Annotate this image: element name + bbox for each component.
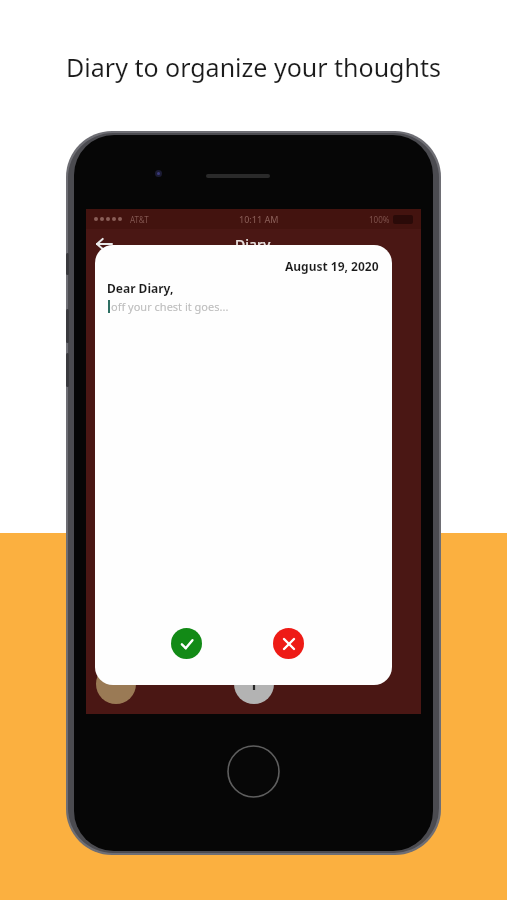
staticText: 10:11 AM [239,213,279,225]
staticText: AT&T [130,214,149,225]
button[interactable]: Add entry [234,664,274,704]
button[interactable]: Profile [96,664,136,704]
staticText: Diary to organize your thoughts [66,50,441,84]
staticText: Dear Diary, [107,280,174,296]
staticText: 100% [369,214,390,225]
staticText: August 19, 2020 [285,258,379,274]
button[interactable]: Save entry [171,628,202,659]
staticText: off your chest it goes... [111,299,229,314]
button[interactable]: Back [90,230,118,258]
staticText: Diary [235,235,271,254]
button[interactable]: Discard entry [273,628,304,659]
button[interactable]: Home [226,744,281,799]
